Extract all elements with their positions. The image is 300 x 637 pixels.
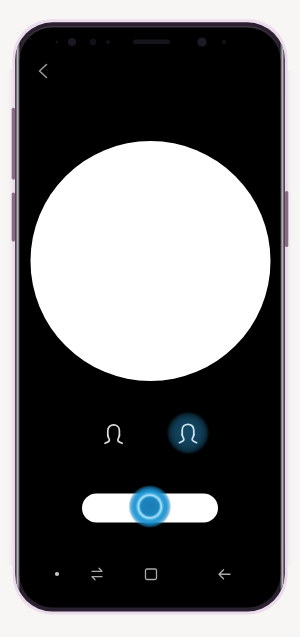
button[interactable]: Menu [39,557,75,591]
button[interactable]: Headphones [166,411,210,455]
button[interactable]: Back [207,557,243,591]
button[interactable]: Recent apps [79,557,115,591]
button[interactable]: Speaker [91,412,135,456]
button[interactable]: Volume slider [72,481,228,533]
button[interactable]: Back [23,51,63,91]
button[interactable]: Home [133,557,169,591]
